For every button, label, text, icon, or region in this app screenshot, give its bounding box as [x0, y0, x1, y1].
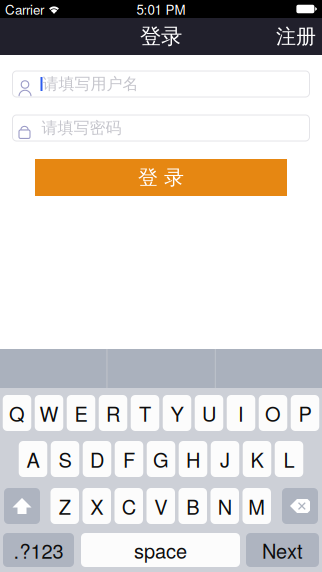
button[interactable]: W: [35, 395, 63, 431]
staticText: 请填写用户名: [42, 74, 138, 94]
button[interactable]: 登 录: [35, 159, 287, 196]
staticText: Z: [59, 492, 71, 520]
staticText: L: [283, 445, 294, 473]
button[interactable]: S: [51, 441, 79, 477]
staticText: F: [123, 445, 135, 473]
button[interactable]: D: [83, 441, 111, 477]
staticText: Q: [9, 399, 25, 427]
button[interactable]: G: [147, 441, 175, 477]
button[interactable]: I: [227, 395, 255, 431]
button[interactable]: H: [179, 441, 207, 477]
staticText: N: [218, 492, 232, 520]
staticText: E: [74, 399, 87, 427]
staticText: 登 录: [138, 165, 184, 190]
staticText: A: [26, 445, 39, 473]
button[interactable]: 请填写密码: [12, 115, 309, 141]
staticText: V: [154, 492, 167, 520]
staticText: D: [90, 445, 104, 473]
button[interactable]: X: [82, 488, 111, 524]
button[interactable]: K: [243, 441, 271, 477]
staticText: P: [298, 399, 311, 427]
button[interactable]: M: [242, 488, 271, 524]
button[interactable]: A: [19, 441, 47, 477]
button[interactable]: 注册: [270, 16, 322, 57]
staticText: C: [122, 492, 136, 520]
button[interactable]: Q: [3, 395, 31, 431]
button[interactable]: Delete: [282, 488, 318, 524]
staticText: W: [39, 399, 58, 427]
staticText: H: [186, 445, 200, 473]
button[interactable]: .?123: [3, 533, 74, 567]
staticText: 登录: [140, 23, 182, 50]
button[interactable]: E: [67, 395, 95, 431]
staticText: I: [238, 399, 244, 427]
staticText: space: [134, 536, 187, 564]
button[interactable]: J: [211, 441, 239, 477]
staticText: S: [58, 445, 71, 473]
button[interactable]: Shift: [4, 488, 40, 524]
button[interactable]: C: [114, 488, 143, 524]
button[interactable]: R: [99, 395, 127, 431]
staticText: R: [106, 399, 120, 427]
button[interactable]: B: [178, 488, 207, 524]
button[interactable]: F: [115, 441, 143, 477]
staticText: M: [248, 492, 265, 520]
button[interactable]: space: [81, 533, 240, 567]
staticText: 注册: [276, 24, 316, 49]
button[interactable]: P: [291, 395, 319, 431]
button[interactable]: N: [210, 488, 239, 524]
staticText: 5:01 PM: [136, 0, 185, 19]
button[interactable]: T: [131, 395, 159, 431]
button[interactable]: Next: [246, 533, 319, 567]
button[interactable]: O: [259, 395, 287, 431]
staticText: K: [250, 445, 263, 473]
staticText: X: [90, 492, 103, 520]
staticText: O: [265, 399, 281, 427]
staticText: J: [220, 445, 230, 473]
button[interactable]: Z: [50, 488, 79, 524]
staticText: Y: [170, 399, 183, 427]
staticText: 请填写密码: [41, 118, 121, 138]
button[interactable]: U: [195, 395, 223, 431]
staticText: B: [186, 492, 199, 520]
staticText: .?123: [13, 536, 63, 564]
staticText: G: [153, 445, 169, 473]
staticText: U: [202, 399, 216, 427]
button[interactable]: Y: [163, 395, 191, 431]
staticText: Carrier: [5, 0, 44, 19]
staticText: T: [139, 399, 151, 427]
button[interactable]: 请填写用户名: [12, 71, 309, 97]
staticText: Next: [262, 536, 303, 564]
button[interactable]: V: [146, 488, 175, 524]
button[interactable]: L: [275, 441, 303, 477]
